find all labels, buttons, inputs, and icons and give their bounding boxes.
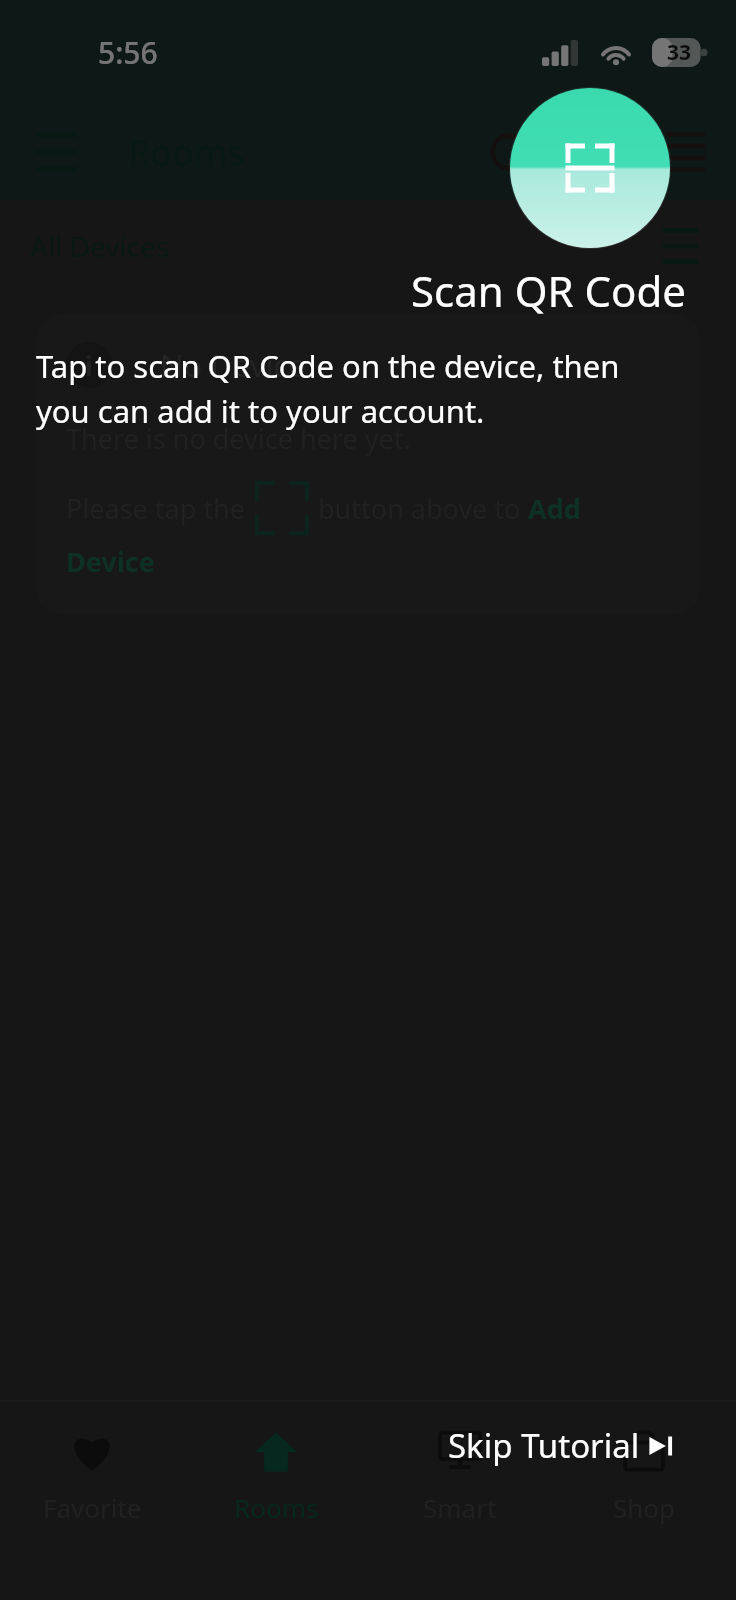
button[interactable]: Refresh <box>480 123 538 181</box>
staticText: 5:56 <box>98 32 158 73</box>
staticText: Skip Tutorial <box>448 1423 640 1468</box>
staticText: Smart <box>423 1490 497 1525</box>
button[interactable]: Device list <box>658 125 712 179</box>
button[interactable]: Scan QR Code <box>510 88 670 248</box>
button[interactable]: Sort <box>656 221 706 271</box>
button[interactable]: All Devices <box>30 219 170 273</box>
button[interactable]: Skip Tutorial <box>442 1417 682 1474</box>
button[interactable]: Add <box>528 490 581 527</box>
button[interactable]: Rooms <box>184 1402 368 1600</box>
staticText: All Devices <box>30 227 170 265</box>
staticText: 33 <box>667 38 692 67</box>
staticText: i <box>85 348 93 383</box>
staticText: There is no device here yet. <box>66 420 411 457</box>
button[interactable]: Device <box>66 543 155 580</box>
button[interactable]: Shop <box>552 1402 736 1600</box>
staticText: Shop <box>613 1490 676 1525</box>
button[interactable]: Smart <box>368 1402 552 1600</box>
button[interactable]: Scan QR Code <box>572 123 630 181</box>
staticText: No Device <box>160 344 306 386</box>
staticText: Tap to scan QR Code on the device, then … <box>36 345 658 432</box>
staticText: Scan QR Code <box>0 262 686 319</box>
staticText: Favorite <box>43 1490 142 1525</box>
staticText: Rooms <box>234 1490 319 1525</box>
button[interactable]: i <box>36 314 700 614</box>
